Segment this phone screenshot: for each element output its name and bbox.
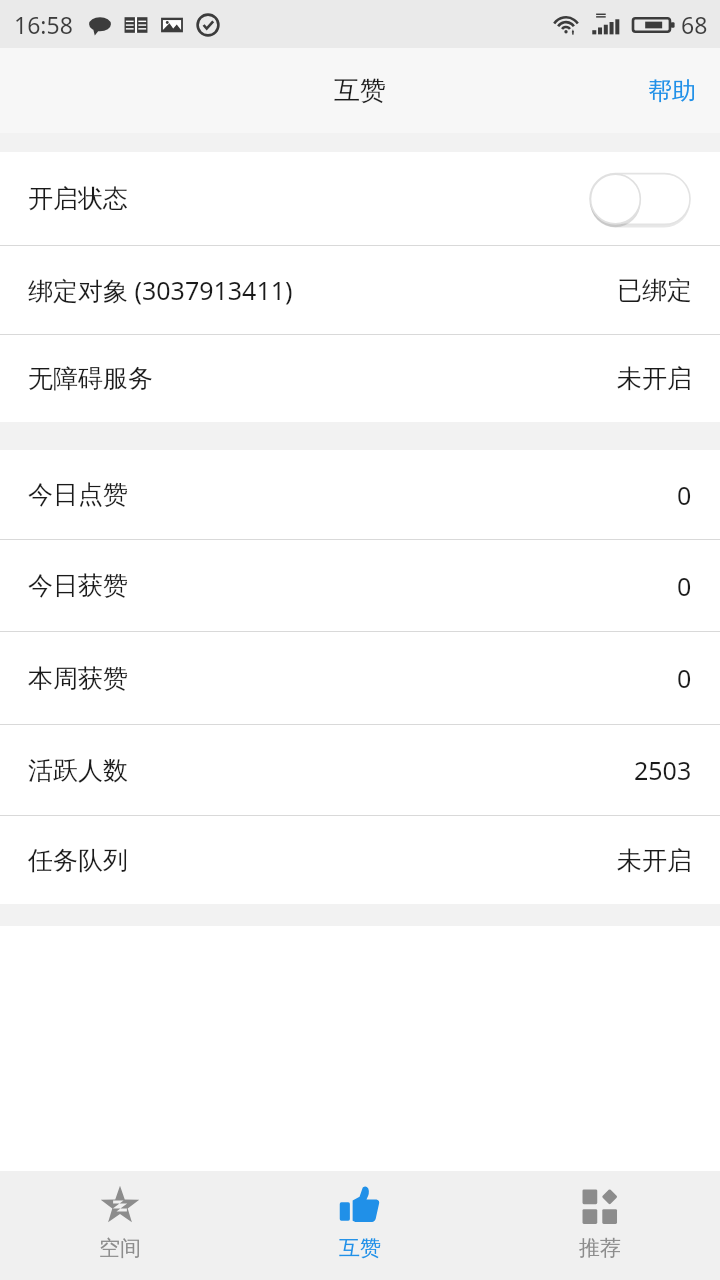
staticText: 今日点赞 (28, 479, 128, 510)
staticText: 2503 (634, 753, 692, 787)
staticText: 0 (677, 661, 692, 695)
staticText: 开启状态 (28, 183, 128, 214)
button[interactable]: 开启状态开关 (588, 168, 692, 230)
button[interactable]: 互赞 (240, 1171, 480, 1280)
button[interactable]: 今日获赞 (0, 540, 720, 631)
button[interactable]: 活跃人数 (0, 725, 720, 815)
button[interactable]: 任务队列 (0, 816, 720, 904)
staticText: 帮助 (648, 76, 696, 106)
staticText: 绑定对象 (3037913411) (28, 273, 293, 307)
staticText: 任务队列 (28, 845, 128, 876)
staticText: 68 (681, 9, 708, 40)
staticText: 未开启 (617, 845, 692, 876)
staticText: 0 (677, 569, 692, 603)
staticText: 推荐 (579, 1235, 621, 1261)
button[interactable]: 推荐 (480, 1171, 720, 1280)
button[interactable]: 空间 (0, 1171, 240, 1280)
staticText: 0 (677, 478, 692, 512)
staticText: 活跃人数 (28, 755, 128, 786)
staticText: 互赞 (339, 1235, 381, 1261)
staticText: 今日获赞 (28, 570, 128, 601)
button[interactable]: 本周获赞 (0, 632, 720, 724)
staticText: 已绑定 (617, 275, 692, 306)
button[interactable]: 绑定对象 (3037913411) (0, 246, 720, 334)
staticText: 无障碍服务 (28, 363, 153, 394)
button[interactable]: 今日点赞 (0, 450, 720, 539)
button[interactable]: 无障碍服务 (0, 335, 720, 422)
staticText: 空间 (99, 1235, 141, 1261)
staticText: 本周获赞 (28, 663, 128, 694)
staticText: 未开启 (617, 363, 692, 394)
staticText: 16:58 (14, 9, 73, 40)
staticText: 互赞 (334, 74, 386, 107)
button[interactable]: 帮助 (624, 48, 720, 133)
button[interactable]: 开启状态 (0, 152, 720, 245)
